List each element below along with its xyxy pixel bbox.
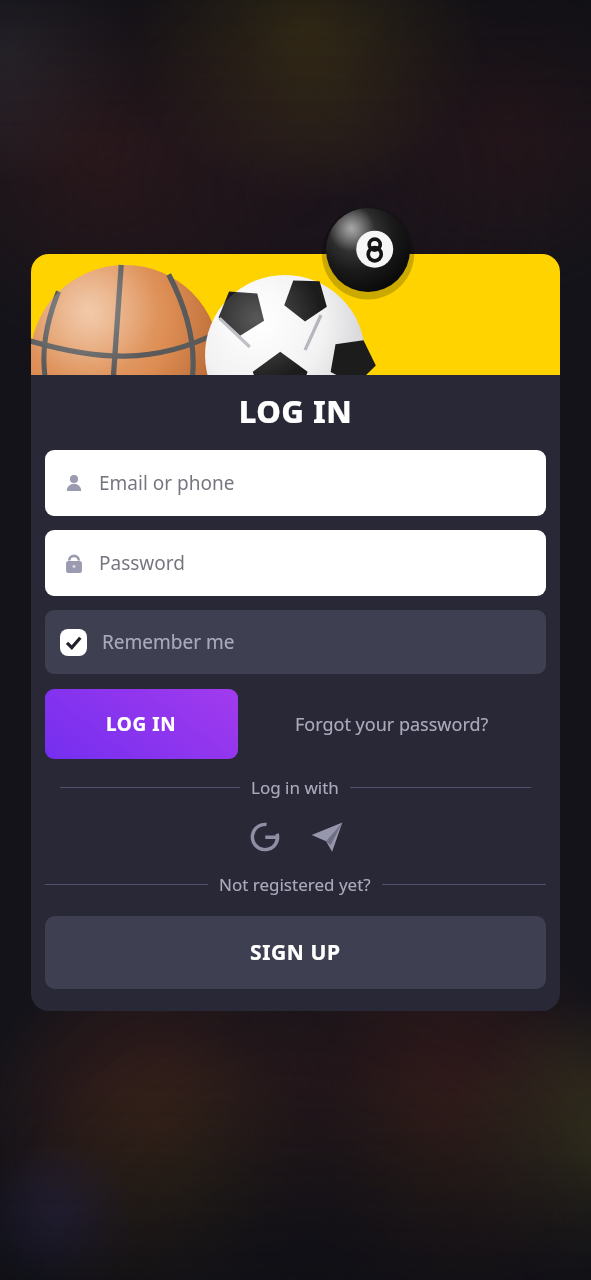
button[interactable]: Password (45, 530, 546, 596)
button[interactable]: Remember me (45, 610, 546, 674)
staticText: Remember me (102, 629, 235, 655)
button[interactable]: Log in with Telegram (305, 815, 349, 859)
staticText: Email or phone (99, 470, 235, 496)
button[interactable]: Email or phone (45, 450, 546, 516)
staticText: LOG IN (31, 390, 560, 432)
button[interactable]: SIGN UP (45, 916, 546, 989)
button[interactable]: LOG IN (45, 689, 238, 759)
button[interactable]: Log in with Google (243, 815, 287, 859)
staticText: SIGN UP (250, 938, 341, 967)
button[interactable]: Forgot your password? (287, 704, 497, 745)
staticText: LOG IN (106, 711, 177, 737)
staticText: Log in with (251, 776, 339, 799)
staticText: Password (99, 550, 185, 576)
staticText: Not registered yet? (219, 873, 371, 896)
staticText: Forgot your password? (295, 712, 489, 737)
